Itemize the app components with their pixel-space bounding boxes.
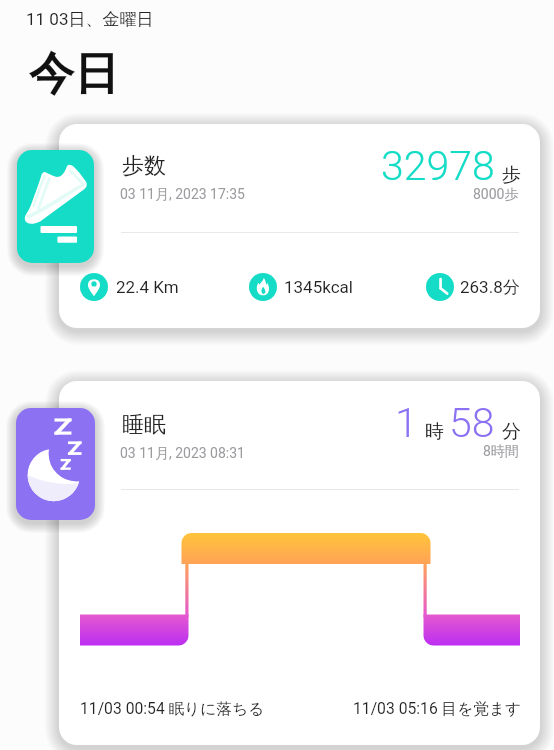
staticText: 32978 <box>381 142 495 190</box>
staticText: 今日 <box>29 46 119 103</box>
button[interactable]: Sleep <box>16 408 95 520</box>
button[interactable]: 263.8分 <box>426 271 530 303</box>
staticText: 03 11月, 2023 08:31 <box>120 445 245 463</box>
staticText: 58 <box>449 399 495 447</box>
staticText: 1345kcal <box>284 277 353 297</box>
staticText: 8000歩 <box>473 186 519 204</box>
staticText: 1 <box>395 399 418 447</box>
button[interactable]: 睡眠 <box>59 381 540 745</box>
button[interactable]: Steps <box>17 150 94 263</box>
button[interactable]: 22.4 Km <box>80 271 186 303</box>
staticText: 11/03 00:54 眠りに落ちる <box>80 699 265 719</box>
staticText: 歩 <box>502 163 521 187</box>
staticText: 時 <box>425 420 444 444</box>
staticText: 睡眠 <box>122 411 166 439</box>
staticText: 分 <box>502 420 521 444</box>
staticText: 22.4 Km <box>116 277 179 297</box>
staticText: 263.8分 <box>460 277 520 298</box>
button[interactable]: 歩数 <box>59 124 540 328</box>
staticText: 歩数 <box>122 152 166 180</box>
staticText: 11/03 05:16 目を覚ます <box>353 699 522 719</box>
staticText: 03 11月, 2023 17:35 <box>120 186 245 204</box>
staticText: 8時間 <box>483 443 519 461</box>
button[interactable]: 1345kcal <box>249 271 354 303</box>
staticText: 11 03日、金曜日 <box>26 9 154 30</box>
